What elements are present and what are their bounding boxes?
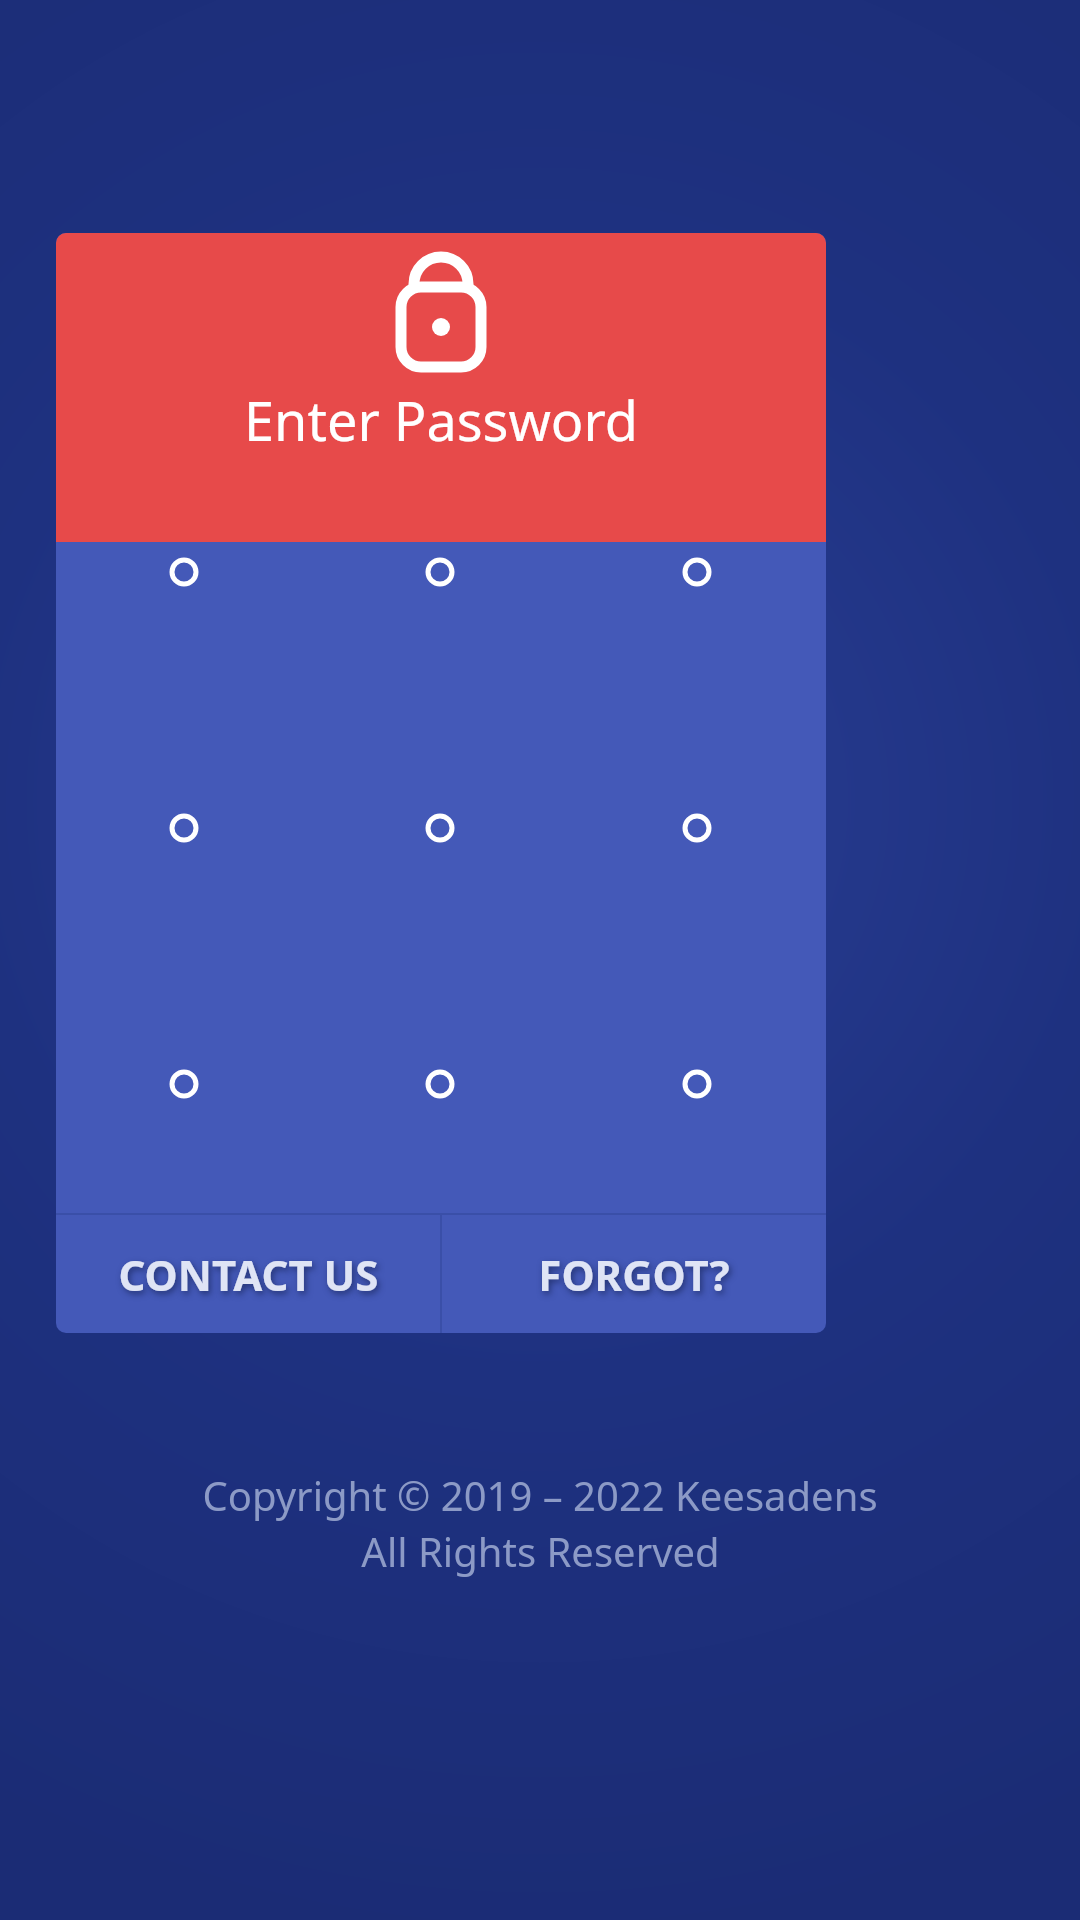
button[interactable]: Pattern dot 7 bbox=[144, 1044, 224, 1124]
button[interactable]: Pattern dot 9 bbox=[657, 1044, 737, 1124]
staticText: CONTACT US bbox=[118, 1246, 379, 1303]
button[interactable]: Pattern dot 8 bbox=[400, 1044, 480, 1124]
button[interactable]: Pattern dot 2 bbox=[400, 532, 480, 612]
staticText: All Rights Reserved bbox=[361, 1524, 720, 1578]
button[interactable]: Pattern dot 3 bbox=[657, 532, 737, 612]
other: Locked bbox=[381, 253, 501, 371]
button[interactable]: Pattern dot 5 bbox=[400, 788, 480, 868]
button[interactable]: Pattern dot 6 bbox=[657, 788, 737, 868]
staticText: Enter Password bbox=[244, 383, 638, 457]
button[interactable]: Pattern dot 1 bbox=[144, 532, 224, 612]
button[interactable]: FORGOT? bbox=[442, 1215, 826, 1333]
button[interactable]: Pattern dot 4 bbox=[144, 788, 224, 868]
staticText: FORGOT? bbox=[538, 1246, 730, 1303]
button[interactable]: CONTACT US bbox=[56, 1215, 440, 1333]
staticText: Copyright © 2019 – 2022 Keesadens bbox=[202, 1468, 878, 1522]
